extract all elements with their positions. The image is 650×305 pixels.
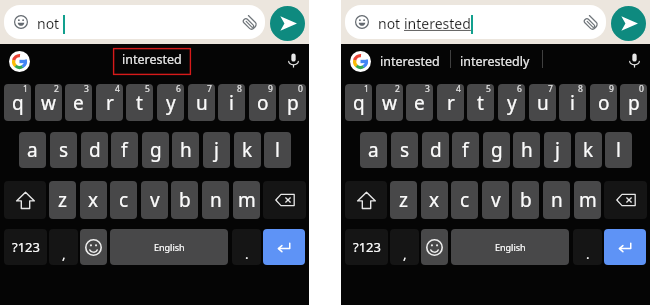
button[interactable] <box>345 5 606 39</box>
button[interactable]: Backspace <box>604 181 647 219</box>
button[interactable]: n <box>202 181 229 219</box>
button[interactable]: Voice input <box>627 53 642 68</box>
button[interactable]: a <box>360 132 387 168</box>
button[interactable]: , <box>390 229 419 265</box>
staticText: n <box>210 187 222 213</box>
button[interactable]: Send <box>270 6 305 41</box>
button[interactable]: u <box>188 84 215 121</box>
button[interactable]: r <box>96 84 123 121</box>
button[interactable]: k <box>575 132 602 168</box>
button[interactable]: p <box>279 84 306 121</box>
button[interactable]: e <box>65 84 92 121</box>
button[interactable]: interested <box>380 48 440 75</box>
button[interactable]: Enter <box>604 229 646 265</box>
staticText: 9 <box>609 84 614 95</box>
staticText: 6 <box>176 84 181 95</box>
button[interactable]: . <box>573 229 602 265</box>
button[interactable]: English <box>451 229 569 265</box>
button[interactable]: t <box>467 84 494 121</box>
staticText: j <box>555 137 560 163</box>
button[interactable]: i <box>218 84 245 121</box>
staticText: v <box>491 187 501 213</box>
button[interactable]: j <box>203 132 230 168</box>
button[interactable]: t <box>126 84 153 121</box>
staticText: English <box>154 241 185 253</box>
button[interactable]: m <box>233 181 260 219</box>
button[interactable]: . <box>232 229 261 265</box>
button[interactable]: k <box>234 132 261 168</box>
staticText: 8 <box>578 84 583 95</box>
button[interactable]: l <box>264 132 291 168</box>
button[interactable]: Emoji <box>421 229 448 265</box>
button[interactable]: Send <box>611 6 646 41</box>
staticText: 1 <box>364 84 369 95</box>
button[interactable]: ?123 <box>345 229 388 265</box>
button[interactable]: h <box>172 132 199 168</box>
button[interactable]: j <box>544 132 571 168</box>
button[interactable]: Google <box>350 51 371 72</box>
button[interactable]: q <box>345 84 372 121</box>
button[interactable]: , <box>49 229 78 265</box>
button[interactable]: p <box>620 84 647 121</box>
button[interactable]: English <box>110 229 228 265</box>
button[interactable]: r <box>437 84 464 121</box>
button[interactable]: d <box>422 132 449 168</box>
button[interactable]: h <box>513 132 540 168</box>
button[interactable]: a <box>19 132 46 168</box>
staticText: 7 <box>548 84 553 95</box>
button[interactable]: Shift <box>345 181 387 219</box>
button[interactable]: o <box>249 84 276 121</box>
button[interactable]: interestedly <box>460 48 530 75</box>
button[interactable]: s <box>50 132 77 168</box>
button[interactable]: ?123 <box>4 229 47 265</box>
button[interactable]: e <box>406 84 433 121</box>
button[interactable]: x <box>421 181 448 219</box>
staticText: f <box>121 137 128 163</box>
staticText: w <box>41 90 56 116</box>
button[interactable]: Backspace <box>263 181 306 219</box>
button[interactable]: v <box>482 181 509 219</box>
staticText: h <box>180 137 192 163</box>
button[interactable]: w <box>376 84 403 121</box>
button[interactable]: c <box>451 181 478 219</box>
button[interactable]: g <box>483 132 510 168</box>
button[interactable]: d <box>81 132 108 168</box>
button[interactable]: n <box>543 181 570 219</box>
button[interactable] <box>4 5 265 39</box>
button[interactable]: z <box>49 181 76 219</box>
button[interactable]: interested <box>113 48 191 75</box>
button[interactable]: y <box>498 84 525 121</box>
button[interactable]: z <box>390 181 417 219</box>
button[interactable]: v <box>141 181 168 219</box>
button[interactable]: Voice input <box>286 53 301 68</box>
button[interactable]: f <box>452 132 479 168</box>
staticText: t <box>136 90 143 116</box>
button[interactable]: i <box>559 84 586 121</box>
staticText: o <box>598 90 610 116</box>
staticText: s <box>59 137 69 163</box>
staticText: z <box>399 187 408 213</box>
button[interactable]: c <box>110 181 137 219</box>
button[interactable]: w <box>35 84 62 121</box>
button[interactable]: y <box>157 84 184 121</box>
staticText: , <box>62 245 66 263</box>
button[interactable]: l <box>605 132 632 168</box>
button[interactable]: Shift <box>4 181 46 219</box>
button[interactable]: Google <box>9 51 30 72</box>
staticText: r <box>106 90 114 116</box>
button[interactable]: s <box>391 132 418 168</box>
button[interactable]: g <box>142 132 169 168</box>
button[interactable]: x <box>80 181 107 219</box>
button[interactable]: Attach <box>242 15 258 31</box>
button[interactable]: f <box>111 132 138 168</box>
button[interactable]: o <box>590 84 617 121</box>
staticText: 9 <box>268 84 273 95</box>
button[interactable]: b <box>512 181 539 219</box>
button[interactable]: u <box>529 84 556 121</box>
button[interactable]: m <box>574 181 601 219</box>
button[interactable]: q <box>4 84 31 121</box>
button[interactable]: Enter <box>263 229 305 265</box>
button[interactable]: Emoji <box>80 229 107 265</box>
button[interactable]: Attach <box>583 15 599 31</box>
button[interactable]: b <box>171 181 198 219</box>
